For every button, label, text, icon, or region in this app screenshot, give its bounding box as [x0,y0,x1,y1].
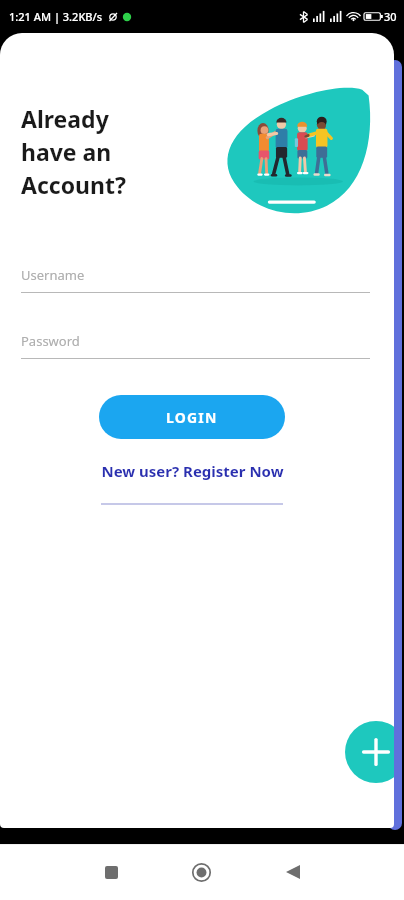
button[interactable]: Username [21,266,370,293]
staticText: Already have an Account? [21,103,126,201]
staticText: 1:21 AM | 3.2KB/s [9,9,103,24]
button[interactable]: LOGIN [99,395,285,439]
button[interactable]: Add [345,721,394,783]
staticText: 30 [384,9,397,24]
button[interactable]: Home [156,852,247,892]
button[interactable]: Password [21,332,370,359]
staticText: Password [21,332,80,350]
button[interactable]: New user? Register Now [95,457,290,485]
staticText: Username [21,266,85,284]
staticText: LOGIN [166,408,218,427]
button[interactable]: Back [247,852,338,892]
button[interactable]: Recents [66,852,156,892]
staticText: New user? Register Now [101,461,284,481]
